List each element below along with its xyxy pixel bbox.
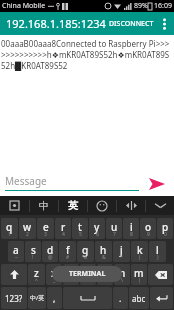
staticText: + [70,277,73,284]
staticText: China Mobile [2,1,46,11]
staticText: 2 [26,231,29,238]
button[interactable]: Resize keyboard [117,196,145,215]
button[interactable]: Enter [150,287,173,309]
staticText: 192.168.1.185:1234 [6,16,106,31]
button[interactable]: Send [145,172,169,196]
button[interactable]: Input settings [0,196,29,215]
staticText: 1 [8,231,11,238]
button[interactable]: Backspace [148,264,173,285]
button[interactable]: h [95,241,112,262]
button[interactable]: o [140,218,156,239]
staticText: 3 [44,231,47,238]
button[interactable]: , [47,287,62,309]
staticText: 8 [130,231,133,238]
button[interactable]: z [28,264,45,285]
staticText: | [138,277,141,284]
staticText: e [43,220,49,234]
button[interactable]: y [89,218,105,239]
staticText: l [156,243,159,257]
staticText: . [119,292,122,304]
button[interactable]: . [113,287,128,309]
button[interactable]: 英 [59,196,87,215]
staticText: j [120,243,123,257]
staticText: & [102,254,106,261]
button[interactable]: 中/英 [28,287,46,309]
button[interactable]: Emoji [88,196,116,215]
button[interactable]: r [55,218,71,239]
button[interactable]: f [59,241,76,262]
button[interactable]: 中 [30,196,58,215]
staticText: DISCONNECT [109,19,154,29]
staticText: ~ [15,254,18,261]
button[interactable]: v [80,264,96,285]
button[interactable]: s [25,241,41,262]
staticText: @ [48,254,53,261]
button[interactable]: Hide keyboard [146,196,174,215]
button[interactable]: e [37,218,54,239]
staticText: t [78,220,82,234]
button[interactable]: Shift [1,264,27,285]
staticText: y [94,220,100,234]
button[interactable]: d [42,241,58,262]
staticText: g [82,243,89,257]
button[interactable]: w [19,218,36,239]
staticText: ^ [35,277,38,284]
staticText: k [137,243,143,257]
staticText: 5 [79,231,82,238]
staticText: ! [32,254,34,261]
button[interactable]: a [8,241,24,262]
staticText: 中/英 [30,294,45,302]
staticText: z [34,266,39,280]
staticText: v [85,266,91,280]
button[interactable]: i [123,218,139,239]
staticText: TERMINAL [69,269,106,279]
button[interactable]: k [131,241,148,262]
staticText: % [83,254,88,261]
staticText: ( [139,254,141,261]
staticText: 9 [147,231,150,238]
button[interactable]: l [149,241,166,262]
staticText: 英 [68,199,78,212]
button[interactable]: j [113,241,130,262]
staticText: abc [132,293,146,304]
button[interactable]: abc [129,287,149,309]
button[interactable]: Space [63,287,112,309]
staticText: f [66,243,70,257]
staticText: 00aaaB00aaa8Connected to Raspberry Pi>>>… [1,38,173,71]
button[interactable]: b [97,264,113,285]
staticText: = [87,277,90,284]
button[interactable]: m [131,264,147,285]
staticText: # [66,254,70,261]
staticText: 89% [134,1,148,11]
staticText: 6 [96,231,99,238]
staticText: ) [157,254,159,261]
staticText: o [145,220,152,234]
button[interactable]: p [157,218,173,239]
staticText: p [162,220,169,234]
staticText: 中 [39,199,49,212]
staticText: w [23,220,32,234]
staticText: x [51,266,57,280]
staticText: m [134,266,144,280]
button[interactable]: g [77,241,94,262]
button[interactable]: More options [157,15,172,33]
button[interactable]: 123? [1,287,27,309]
button[interactable]: q [1,218,18,239]
staticText: , [53,292,56,304]
staticText: 7 [113,231,116,238]
button[interactable]: DISCONNECT [106,15,157,33]
staticText: n [119,266,126,280]
staticText: s [31,243,36,257]
staticText: q [6,220,13,234]
button[interactable]: t [72,218,88,239]
button[interactable]: x [46,264,62,285]
button[interactable]: u [106,218,122,239]
staticText: a [13,243,19,257]
button[interactable]: c [63,264,79,285]
staticText: 0 [164,231,167,238]
button[interactable]: n [114,264,130,285]
staticText: * [120,254,123,261]
button[interactable]: Message [5,174,139,196]
staticText: \ [121,277,123,284]
staticText: _ [53,277,56,284]
